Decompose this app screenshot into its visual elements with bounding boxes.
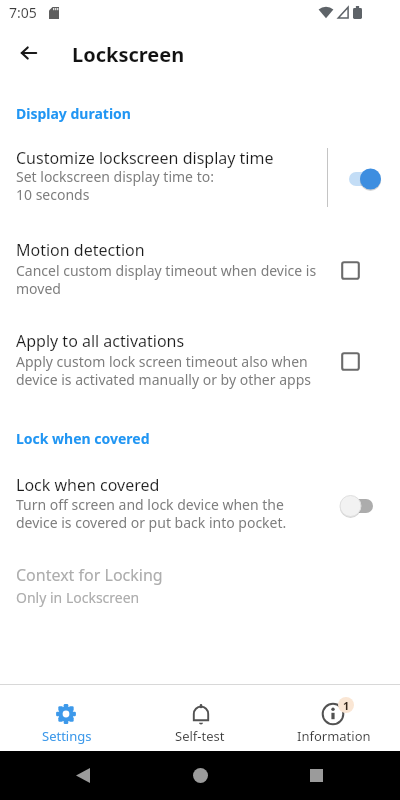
staticText: Self-test bbox=[175, 727, 225, 745]
staticText: Lockscreen bbox=[72, 41, 185, 68]
button[interactable]: Motion detection bbox=[0, 237, 400, 311]
staticText: Settings bbox=[42, 727, 92, 745]
button[interactable] bbox=[14, 38, 44, 68]
button[interactable]: Apply to all activations bbox=[0, 328, 400, 402]
staticText: Turn off screen and lock device when the… bbox=[16, 495, 287, 532]
button[interactable]: Customize lockscreen display time bbox=[0, 145, 400, 209]
button[interactable] bbox=[177, 751, 223, 800]
staticText: Motion detection bbox=[16, 239, 145, 261]
staticText: Display duration bbox=[16, 104, 131, 123]
staticText: Set lockscreen display time to: 10 secon… bbox=[16, 167, 214, 204]
button[interactable]: Context for Locking bbox=[0, 564, 400, 612]
staticText: 7:05 bbox=[9, 3, 37, 22]
button[interactable] bbox=[336, 163, 384, 195]
button[interactable] bbox=[294, 751, 339, 800]
staticText: Apply custom lock screen timeout also wh… bbox=[16, 352, 311, 389]
staticText: Information bbox=[297, 727, 371, 745]
staticText: Customize lockscreen display time bbox=[16, 147, 274, 169]
staticText: Only in Lockscreen bbox=[16, 588, 140, 607]
button[interactable]: 1 bbox=[267, 685, 400, 751]
staticText: Apply to all activations bbox=[16, 330, 185, 352]
staticText: 1 bbox=[343, 698, 350, 713]
button[interactable]: Settings bbox=[0, 685, 133, 751]
button[interactable] bbox=[60, 751, 105, 800]
staticText: Lock when covered bbox=[16, 429, 150, 448]
staticText: Context for Locking bbox=[16, 564, 163, 586]
staticText: Lock when covered bbox=[16, 474, 160, 496]
button[interactable]: Self-test bbox=[133, 685, 267, 751]
button[interactable]: Lock when covered bbox=[0, 472, 400, 542]
staticText: Cancel custom display timeout when devic… bbox=[16, 261, 317, 298]
